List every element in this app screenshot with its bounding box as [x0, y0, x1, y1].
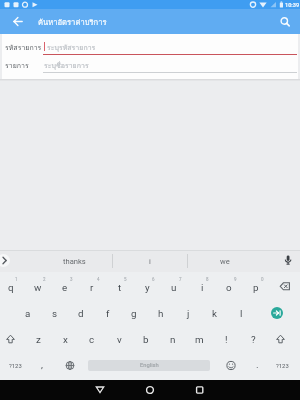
button[interactable] — [134, 273, 160, 299]
staticText: 4 — [97, 277, 100, 282]
staticText: ?123 — [276, 363, 289, 370]
staticText: l — [240, 308, 243, 319]
button[interactable] — [216, 273, 242, 299]
staticText: i — [149, 257, 151, 266]
button[interactable] — [189, 273, 215, 299]
staticText: v — [117, 334, 122, 345]
staticText: y — [145, 282, 150, 293]
staticText: 9 — [234, 277, 237, 282]
button[interactable] — [25, 326, 51, 352]
button[interactable] — [40, 250, 112, 272]
staticText: d — [78, 308, 84, 319]
button[interactable] — [186, 326, 212, 352]
button[interactable] — [243, 273, 269, 299]
staticText: 10:39 — [285, 2, 300, 9]
button[interactable] — [188, 250, 262, 272]
staticText: 5 — [124, 277, 127, 282]
staticText: we — [220, 257, 230, 266]
staticText: ระบุชื่อรายการ — [44, 60, 89, 71]
button[interactable] — [228, 299, 254, 325]
button[interactable] — [0, 273, 24, 299]
staticText: English — [140, 362, 159, 369]
staticText: n — [170, 334, 176, 345]
staticText: s — [52, 308, 58, 319]
staticText: 6 — [152, 277, 155, 282]
staticText: o — [226, 282, 232, 293]
button[interactable] — [3, 353, 27, 379]
staticText: ?123 — [9, 363, 22, 370]
button[interactable] — [79, 273, 105, 299]
button[interactable] — [80, 380, 126, 400]
staticText: , — [41, 359, 43, 370]
staticText: f — [106, 308, 110, 319]
button[interactable] — [160, 326, 186, 352]
button[interactable] — [52, 326, 78, 352]
staticText: รหัสรายการ — [5, 42, 42, 53]
button[interactable] — [161, 273, 187, 299]
staticText: c — [89, 334, 95, 345]
staticText: t — [118, 282, 122, 293]
staticText: g — [131, 308, 137, 319]
button[interactable] — [106, 326, 132, 352]
staticText: q — [8, 282, 14, 293]
button[interactable] — [0, 9, 300, 34]
button[interactable] — [173, 380, 220, 400]
staticText: รายการ — [5, 60, 29, 71]
staticText: r — [90, 282, 94, 293]
button[interactable] — [148, 299, 174, 325]
staticText: 2 — [43, 277, 46, 282]
staticText: 1 — [15, 277, 18, 282]
staticText: 8 — [206, 277, 209, 282]
staticText: ระบุรหัสรายการ — [47, 42, 96, 53]
staticText: h — [158, 308, 164, 319]
staticText: m — [195, 334, 204, 345]
staticText: x — [63, 334, 68, 345]
button[interactable] — [175, 299, 201, 325]
button[interactable]: English — [88, 360, 210, 371]
staticText: ! — [225, 334, 228, 345]
button[interactable] — [201, 299, 227, 325]
staticText: 0 — [261, 277, 264, 282]
button[interactable] — [25, 273, 51, 299]
button[interactable] — [79, 326, 105, 352]
button[interactable] — [270, 353, 296, 379]
staticText: ? — [251, 334, 256, 345]
button[interactable] — [213, 326, 239, 352]
staticText: a — [25, 308, 31, 319]
staticText: 7 — [179, 277, 182, 282]
staticText: 3 — [70, 277, 73, 282]
button[interactable] — [271, 307, 283, 319]
staticText: k — [212, 308, 217, 319]
button[interactable] — [113, 250, 187, 272]
button[interactable] — [121, 299, 147, 325]
staticText: z — [36, 334, 41, 345]
button[interactable] — [126, 380, 173, 400]
button[interactable] — [42, 299, 68, 325]
staticText: thanks — [63, 257, 86, 266]
staticText: u — [171, 282, 177, 293]
button[interactable] — [107, 273, 133, 299]
button[interactable] — [52, 273, 78, 299]
staticText: i — [201, 282, 204, 293]
staticText: b — [143, 334, 149, 345]
button[interactable] — [95, 299, 121, 325]
staticText: j — [187, 308, 190, 319]
staticText: w — [34, 282, 42, 293]
button[interactable] — [133, 326, 159, 352]
staticText: e — [62, 282, 68, 293]
staticText: ค้นหาอัตราค่าบริการ — [38, 16, 107, 28]
staticText: . — [256, 359, 259, 370]
button[interactable] — [68, 299, 94, 325]
button[interactable] — [15, 299, 41, 325]
button[interactable] — [240, 326, 266, 352]
staticText: p — [253, 282, 259, 293]
